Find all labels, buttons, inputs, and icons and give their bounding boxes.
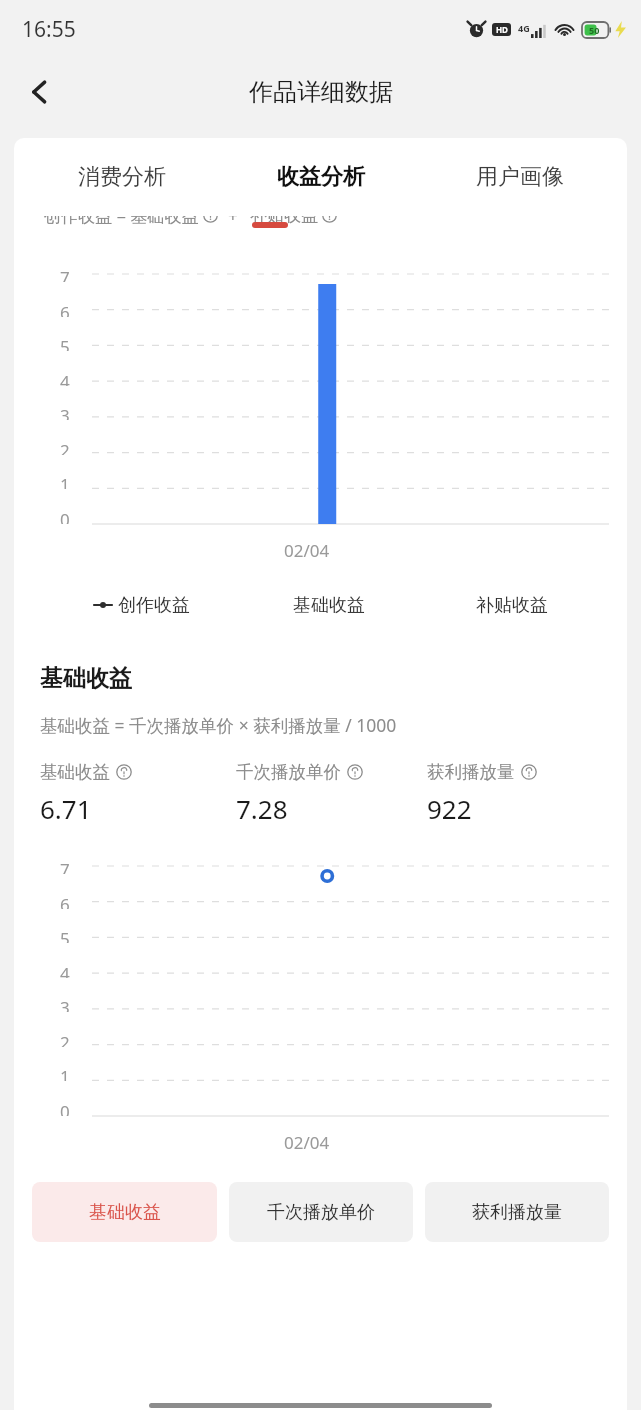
staticText: 4 (60, 962, 70, 978)
staticText: 50 (589, 24, 600, 36)
staticText: 6 (60, 893, 70, 909)
staticText: 用户画像 (476, 163, 564, 191)
staticText: 16:55 (22, 15, 76, 44)
button[interactable]: 获利播放量 (427, 761, 601, 826)
staticText: 0 (60, 1100, 70, 1116)
staticText: 2 (60, 439, 70, 455)
button[interactable]: 用户画像 (420, 138, 619, 216)
staticText: + (228, 216, 238, 227)
staticText: 创作收益 (118, 594, 190, 617)
staticText: 02/04 (284, 539, 330, 562)
button[interactable]: 基础收益 (40, 761, 236, 826)
staticText: 3 (60, 404, 70, 420)
staticText: 消费分析 (78, 163, 166, 191)
staticText: 基础收益 = 千次播放单价 × 获利播放量 / 1000 (40, 713, 397, 737)
button[interactable]: 获利播放量 (425, 1182, 609, 1242)
staticText: 6 (60, 301, 70, 317)
staticText: 创作收益 = 基础收益 (44, 216, 199, 227)
staticText: 7 (60, 858, 70, 874)
staticText: 0 (60, 508, 70, 524)
staticText: HD (496, 24, 508, 35)
staticText: 922 (427, 791, 472, 826)
staticText: 获利播放量 (427, 761, 515, 783)
staticText: 7 (60, 266, 70, 282)
staticText: 补贴收益 (250, 216, 318, 226)
staticText: 3 (60, 996, 70, 1012)
staticText: 作品详细数据 (249, 77, 393, 107)
staticText: 千次播放单价 (236, 761, 341, 783)
staticText: 4G (518, 22, 530, 34)
staticText: 获利播放量 (472, 1201, 562, 1224)
staticText: 基础收益 (293, 594, 365, 617)
staticText: 4 (60, 370, 70, 386)
button[interactable]: 创作收益 (46, 576, 237, 634)
staticText: 补贴收益 (476, 594, 548, 617)
staticText: 5 (60, 335, 70, 351)
button[interactable]: 消费分析 (22, 138, 221, 216)
staticText: 1 (60, 1065, 70, 1081)
staticText: 7.28 (236, 791, 288, 826)
staticText: 千次播放单价 (267, 1201, 375, 1224)
staticText: 收益分析 (277, 163, 365, 191)
button[interactable]: Back (12, 64, 68, 120)
staticText: 2 (60, 1031, 70, 1047)
staticText: 6.71 (40, 791, 92, 826)
button[interactable]: 基础收益 (32, 1182, 217, 1242)
staticText: 5 (60, 927, 70, 943)
staticText: 基础收益 (40, 664, 132, 693)
staticText: 02/04 (284, 1131, 330, 1154)
button[interactable]: 千次播放单价 (229, 1182, 413, 1242)
staticText: 1 (60, 473, 70, 489)
staticText: 基础收益 (40, 761, 110, 783)
staticText: 基础收益 (89, 1201, 161, 1224)
button[interactable]: 收益分析 (221, 138, 420, 216)
button[interactable]: 补贴收益 (420, 576, 603, 634)
button[interactable]: 基础收益 (237, 576, 420, 634)
button[interactable]: 千次播放单价 (236, 761, 427, 826)
